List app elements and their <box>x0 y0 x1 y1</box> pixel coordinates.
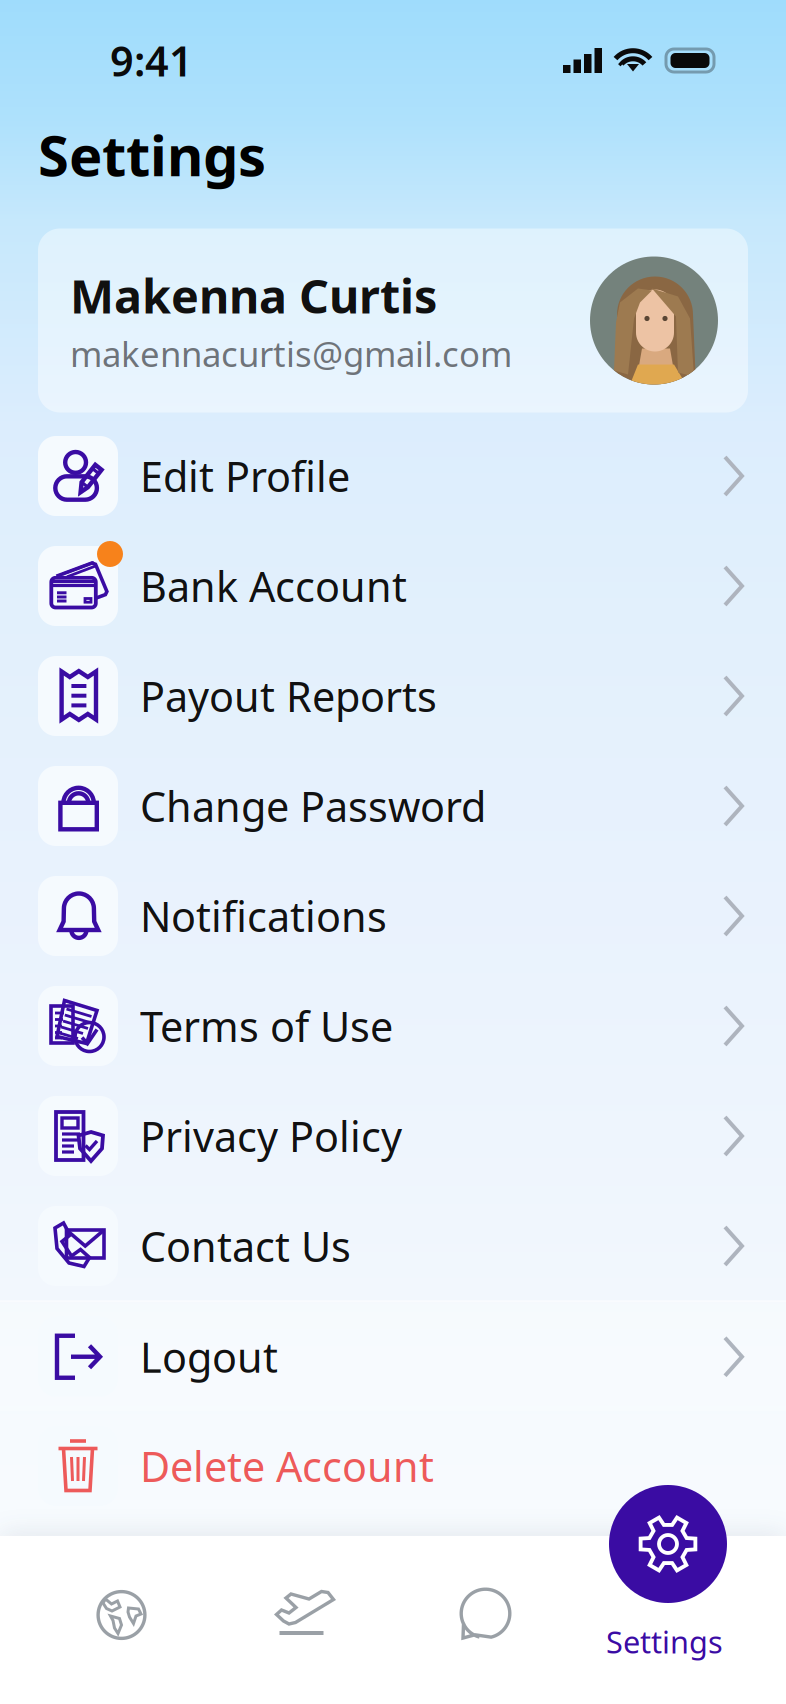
staticText: Settings <box>38 117 266 192</box>
button[interactable]: Explore <box>31 1536 212 1704</box>
staticText: Bank Account <box>140 559 407 613</box>
staticText: makennacurtis@gmail.com <box>70 330 512 376</box>
staticText: Notifications <box>140 889 387 943</box>
staticText: Payout Reports <box>140 669 437 723</box>
staticText: Edit Profile <box>140 449 350 503</box>
button[interactable]: Settings <box>574 1536 755 1704</box>
button[interactable]: Logout <box>0 1302 786 1412</box>
staticText: Change Password <box>140 779 486 833</box>
button[interactable]: Flights <box>212 1536 393 1704</box>
button[interactable]: Payout Reports <box>0 641 786 751</box>
button[interactable]: Delete Account <box>0 1411 786 1521</box>
staticText: Delete Account <box>140 1439 434 1493</box>
button[interactable]: Notifications <box>0 861 786 971</box>
button[interactable]: Contact Us <box>0 1191 786 1301</box>
staticText: Logout <box>140 1329 278 1384</box>
button[interactable]: Messages <box>393 1536 574 1704</box>
staticText: Privacy Policy <box>140 1109 402 1163</box>
button[interactable]: Edit Profile <box>0 421 786 531</box>
button[interactable]: Change Password <box>0 751 786 861</box>
staticText: Settings <box>606 1621 723 1662</box>
staticText: Makenna Curtis <box>70 264 437 326</box>
button[interactable]: Settings <box>609 1485 727 1603</box>
button[interactable]: Privacy Policy <box>0 1081 786 1191</box>
staticText: 9:41 <box>110 33 193 88</box>
staticText: Terms of Use <box>140 999 393 1053</box>
button[interactable]: Bank Account <box>0 531 786 641</box>
staticText: Contact Us <box>140 1219 351 1273</box>
button[interactable]: Terms of Use <box>0 971 786 1081</box>
